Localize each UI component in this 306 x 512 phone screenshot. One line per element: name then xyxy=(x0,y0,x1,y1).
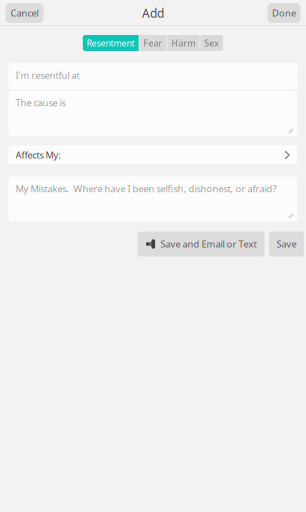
button[interactable]: Sex xyxy=(200,35,223,51)
staticText: Save xyxy=(276,238,296,250)
staticText: Sex xyxy=(204,37,219,49)
button[interactable]: I'm resentful at xyxy=(8,63,297,89)
button[interactable]: Affects My: xyxy=(8,145,297,164)
staticText: Resentment xyxy=(87,37,135,49)
staticText: Add xyxy=(142,5,164,21)
button[interactable]: Resentment xyxy=(83,35,139,51)
button[interactable]: The cause is xyxy=(8,90,297,136)
staticText: My Mistakes. Where have I been selfish, … xyxy=(15,182,276,195)
staticText: Harm xyxy=(171,37,195,49)
button[interactable]: Cancel xyxy=(5,3,43,23)
button[interactable]: Fear xyxy=(140,35,167,51)
button[interactable]: My Mistakes. Where have I been selfish, … xyxy=(8,176,297,221)
button[interactable]: Harm xyxy=(167,35,199,51)
staticText: Cancel xyxy=(10,7,38,19)
staticText: Fear xyxy=(144,37,163,49)
button[interactable]: Done xyxy=(267,3,300,23)
staticText: Affects My: xyxy=(15,149,61,161)
button[interactable]: Save and Email or Text xyxy=(137,231,264,256)
staticText: I'm resentful at xyxy=(15,69,79,81)
staticText: Save and Email or Text xyxy=(160,238,256,250)
staticText: The cause is xyxy=(15,96,65,109)
button[interactable]: Save xyxy=(269,231,304,256)
staticText: Done xyxy=(272,7,296,19)
